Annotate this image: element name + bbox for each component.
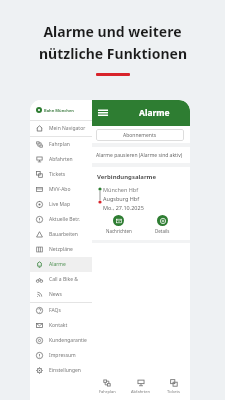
button[interactable]: Nachrichten — [97, 215, 140, 234]
staticText: FAQs — [49, 307, 61, 314]
button[interactable]: Netzpläne — [30, 242, 92, 257]
staticText: Fahrplan — [99, 389, 116, 394]
staticText: Aktuelle Betr. — [49, 216, 80, 223]
button[interactable]: MVV-Abo — [30, 182, 92, 197]
button[interactable]: Tickets — [30, 167, 92, 182]
button[interactable]: Tickets — [157, 372, 190, 400]
staticText: Kundengarantie — [49, 337, 87, 344]
staticText: Einstellungen — [49, 367, 81, 374]
staticText: Alarme — [49, 261, 66, 268]
button[interactable]: Fahrplan — [90, 372, 124, 400]
staticText: Fahrplan — [49, 141, 70, 148]
staticText: Tickets — [49, 171, 66, 178]
staticText: Abonnements — [123, 132, 157, 139]
staticText: nützliche Funktionen — [39, 44, 187, 63]
button[interactable]: Mein Navigator — [30, 121, 92, 136]
button[interactable]: Aktuelle Betr. — [30, 212, 92, 227]
staticText: Nachrichten — [106, 228, 132, 234]
button[interactable]: News — [30, 287, 92, 302]
staticText: Verbindungsalarme — [97, 173, 157, 181]
staticText: Bauarbeiten — [49, 231, 78, 238]
staticText: Alarme pausieren (Alarme sind aktiv) — [96, 152, 183, 159]
button[interactable]: FAQs — [30, 303, 92, 318]
button[interactable]: Abonnements — [96, 129, 184, 141]
staticText: Bahn München — [44, 108, 74, 113]
staticText: Alarme — [139, 107, 170, 119]
button[interactable]: Kundengarantie — [30, 333, 92, 348]
staticText: Tickets — [167, 389, 180, 394]
button[interactable]: Kontakt — [30, 318, 92, 333]
button[interactable]: Details — [140, 215, 184, 234]
button[interactable]: Abfahrten — [30, 152, 92, 167]
button[interactable]: Menü öffnen — [96, 106, 110, 120]
staticText: Mo., 27.10.2025 — [103, 204, 144, 211]
staticText: MVV-Abo — [49, 186, 71, 193]
staticText: Kontakt — [49, 322, 68, 329]
button[interactable]: Call a Bike & — [30, 272, 92, 287]
staticText: München Hbf — [103, 186, 139, 193]
staticText: Abfahrten — [131, 389, 150, 394]
staticText: Impressum — [49, 352, 76, 359]
staticText: Augsburg Hbf — [103, 195, 140, 202]
button[interactable]: Bauarbeiten — [30, 227, 92, 242]
staticText: Live Map — [49, 201, 70, 208]
staticText: Mein Navigator — [49, 125, 86, 132]
staticText: Call a Bike & — [49, 276, 78, 283]
staticText: Details — [155, 228, 170, 234]
staticText: Netzpläne — [49, 246, 73, 253]
staticText: News — [49, 291, 62, 298]
button[interactable]: Alarme pausieren (Alarme sind aktiv) — [90, 147, 190, 163]
button[interactable]: Alarme — [30, 257, 92, 272]
staticText: Abfahrten — [49, 156, 73, 163]
button[interactable]: Impressum — [30, 348, 92, 363]
button[interactable]: Abfahrten — [124, 372, 157, 400]
button[interactable]: Einstellungen — [30, 363, 92, 378]
button[interactable]: Fahrplan — [30, 137, 92, 152]
staticText: Alarme und weitere — [43, 22, 182, 41]
button[interactable]: Live Map — [30, 197, 92, 212]
